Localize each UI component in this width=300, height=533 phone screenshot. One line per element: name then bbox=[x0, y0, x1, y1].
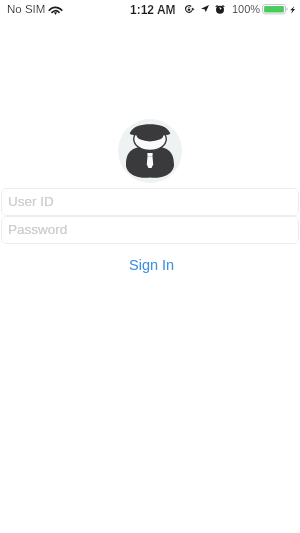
staticText: 1:12 AM bbox=[130, 3, 176, 16]
other: Location bbox=[201, 5, 209, 12]
button[interactable]: Sign In bbox=[2, 254, 300, 276]
button[interactable]: Password bbox=[1, 216, 299, 244]
other: Battery 100 percent bbox=[262, 4, 290, 15]
staticText: Sign In bbox=[129, 257, 175, 273]
staticText: Password bbox=[8, 222, 68, 237]
staticText: User ID bbox=[8, 194, 54, 209]
other: Rotation lock bbox=[185, 5, 195, 13]
staticText: 100% bbox=[232, 3, 261, 15]
button[interactable]: User ID bbox=[1, 188, 299, 216]
staticText: No SIM bbox=[7, 3, 46, 16]
other: Alarm bbox=[215, 5, 225, 14]
